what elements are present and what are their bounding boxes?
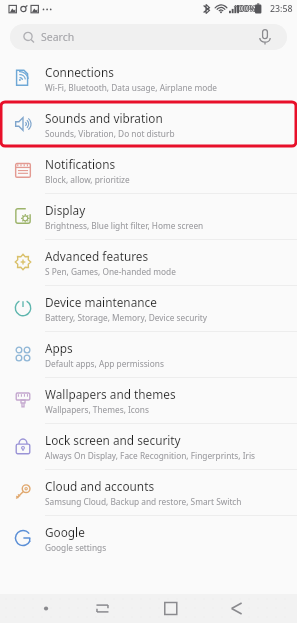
button[interactable]: Apps <box>0 331 297 377</box>
button[interactable]: Notifications <box>0 147 297 193</box>
button[interactable]: Search <box>10 24 287 50</box>
button[interactable]: Back <box>198 594 297 623</box>
button[interactable]: Recents <box>0 594 99 623</box>
staticText: 100% <box>235 3 257 15</box>
button[interactable]: Wallpapers and themes <box>0 377 297 423</box>
staticText: Always On Display, Face Recognition, Fin… <box>45 450 256 461</box>
staticText: Wallpapers, Themes, Icons <box>45 404 149 415</box>
button[interactable]: Lock screen and security <box>0 423 297 469</box>
button[interactable]: Sounds and vibration <box>0 101 297 147</box>
button[interactable]: Display <box>0 193 297 239</box>
button[interactable]: Home <box>99 594 198 623</box>
button[interactable]: Google <box>0 515 297 561</box>
staticText: Wi-Fi, Bluetooth, Data usage, Airplane m… <box>45 82 217 93</box>
button[interactable]: Device maintenance <box>0 285 297 331</box>
staticText: Apps <box>45 340 73 356</box>
staticText: Connections <box>45 64 114 80</box>
staticText: Advanced features <box>45 248 149 264</box>
staticText: 100% <box>233 3 256 15</box>
staticText: Sounds and vibration <box>45 110 163 126</box>
button[interactable]: Connections <box>0 55 297 101</box>
staticText: S Pen, Games, One-handed mode <box>45 266 176 277</box>
staticText: Default apps, App permissions <box>45 358 164 369</box>
staticText: Samsung Cloud, Backup and restore, Smart… <box>45 496 242 507</box>
staticText: 23:58 <box>270 3 293 15</box>
button[interactable]: Cloud and accounts <box>0 469 297 515</box>
staticText: Search <box>41 30 75 44</box>
staticText: Cloud and accounts <box>45 478 155 494</box>
staticText: Lock screen and security <box>45 432 181 448</box>
staticText: Device maintenance <box>45 294 157 310</box>
button[interactable]: Advanced features <box>0 239 297 285</box>
staticText: Battery, Storage, Memory, Device securit… <box>45 312 208 323</box>
staticText: Brightness, Blue light filter, Home scre… <box>45 220 204 231</box>
staticText: Notifications <box>45 156 116 172</box>
staticText: Wallpapers and themes <box>45 386 176 402</box>
staticText: Block, allow, prioritize <box>45 174 130 185</box>
staticText: Sounds, Vibration, Do not disturb <box>45 128 175 139</box>
staticText: Display <box>45 202 86 218</box>
staticText: Google <box>45 524 85 540</box>
staticText: Google settings <box>45 542 107 553</box>
